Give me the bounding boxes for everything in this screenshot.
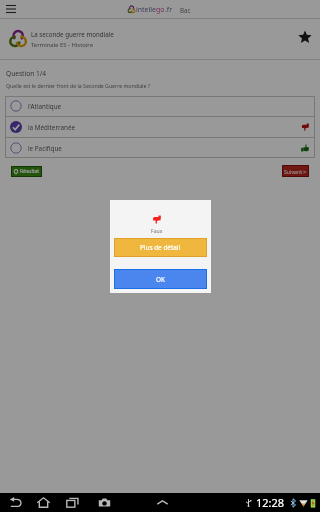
button[interactable]: Accueil <box>35 493 51 512</box>
button[interactable]: l'Atlantique <box>5 96 315 116</box>
staticText: la Méditerranée <box>28 123 75 132</box>
button[interactable]: Applications récentes <box>64 493 80 512</box>
staticText: intelle <box>136 5 156 14</box>
staticText: 12:28 <box>256 495 285 510</box>
staticText: go <box>156 5 165 14</box>
staticText: l'Atlantique <box>28 102 62 111</box>
staticText: Résultat <box>20 168 40 175</box>
staticText: Quelle est le dernier front de la Second… <box>6 82 150 89</box>
button[interactable]: La seconde guerre mondiale <box>0 19 320 59</box>
staticText: Question 1/4 <box>6 69 46 78</box>
staticText: Suivant > <box>284 168 307 175</box>
staticText: .fr <box>165 5 173 14</box>
button[interactable]: Plus de détail <box>114 238 207 257</box>
staticText: Bac <box>180 6 191 14</box>
button[interactable]: Menu <box>0 0 22 18</box>
button[interactable]: Favori <box>291 23 319 51</box>
button[interactable]: OK <box>114 269 207 289</box>
staticText: Terminale ES - Histoire <box>31 41 93 49</box>
staticText: Faux <box>151 227 163 234</box>
button[interactable]: le Pacifique <box>5 138 315 158</box>
staticText: La seconde guerre mondiale <box>31 30 114 38</box>
button[interactable]: Notifications <box>154 493 170 512</box>
button[interactable]: Suivant > <box>282 165 309 177</box>
staticText: OK <box>156 275 165 284</box>
staticText: Plus de détail <box>140 243 181 252</box>
button[interactable]: la Méditerranée <box>5 117 315 137</box>
button[interactable]: Capture d'écran <box>96 493 112 512</box>
button[interactable]: Retour <box>7 493 23 512</box>
staticText: le Pacifique <box>28 144 62 153</box>
button[interactable]: Résultat <box>11 166 42 177</box>
